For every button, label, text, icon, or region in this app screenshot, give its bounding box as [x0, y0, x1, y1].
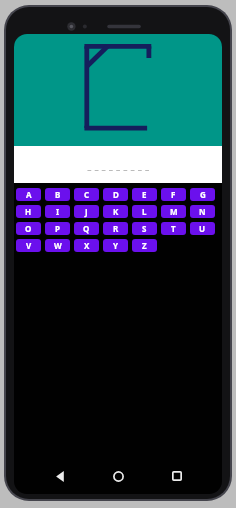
button[interactable]: M — [161, 205, 186, 218]
staticText: X — [84, 240, 90, 251]
staticText: V — [26, 240, 32, 251]
staticText: Y — [113, 240, 119, 251]
button[interactable]: E — [132, 188, 157, 201]
button[interactable]: W — [45, 239, 70, 252]
staticText: J — [85, 206, 88, 217]
staticText: B — [55, 189, 61, 200]
staticText: U — [199, 223, 206, 234]
staticText: S — [142, 223, 147, 234]
staticText: W — [54, 240, 62, 251]
staticText: M — [170, 206, 178, 217]
button[interactable]: T — [161, 222, 186, 235]
staticText: H — [25, 206, 32, 217]
staticText: T — [171, 223, 176, 234]
staticText: A — [26, 189, 32, 200]
button[interactable]: P — [45, 222, 70, 235]
button[interactable]: K — [103, 205, 128, 218]
button[interactable]: O — [16, 222, 41, 235]
staticText: L — [142, 206, 147, 217]
button[interactable]: J — [74, 205, 99, 218]
staticText: G — [200, 189, 206, 200]
staticText: N — [199, 206, 206, 217]
button[interactable]: Q — [74, 222, 99, 235]
button[interactable]: X — [74, 239, 99, 252]
button[interactable]: D — [103, 188, 128, 201]
button[interactable]: Z — [132, 239, 157, 252]
button[interactable]: N — [190, 205, 215, 218]
button[interactable]: I — [45, 205, 70, 218]
staticText: E — [142, 189, 147, 200]
button[interactable]: G — [190, 188, 215, 201]
button[interactable]: Recent apps — [164, 463, 190, 489]
button[interactable]: R — [103, 222, 128, 235]
button[interactable]: F — [161, 188, 186, 201]
staticText: Q — [83, 223, 90, 234]
button[interactable]: Back — [47, 463, 73, 489]
button[interactable]: A — [16, 188, 41, 201]
button[interactable]: B — [45, 188, 70, 201]
button[interactable]: V — [16, 239, 41, 252]
button[interactable]: C — [74, 188, 99, 201]
staticText: O — [25, 223, 32, 234]
staticText: K — [113, 206, 119, 217]
staticText: D — [113, 189, 119, 200]
button[interactable]: U — [190, 222, 215, 235]
staticText: _ _ _ _ _ _ _ _ _ — [87, 159, 150, 171]
staticText: Z — [142, 240, 147, 251]
staticText: R — [113, 223, 119, 234]
button[interactable]: Home — [105, 463, 131, 489]
button[interactable]: S — [132, 222, 157, 235]
button[interactable]: H — [16, 205, 41, 218]
button[interactable]: L — [132, 205, 157, 218]
staticText: P — [55, 223, 60, 234]
staticText: I — [56, 206, 60, 217]
staticText: F — [171, 189, 176, 200]
staticText: C — [84, 189, 90, 200]
button[interactable]: Y — [103, 239, 128, 252]
